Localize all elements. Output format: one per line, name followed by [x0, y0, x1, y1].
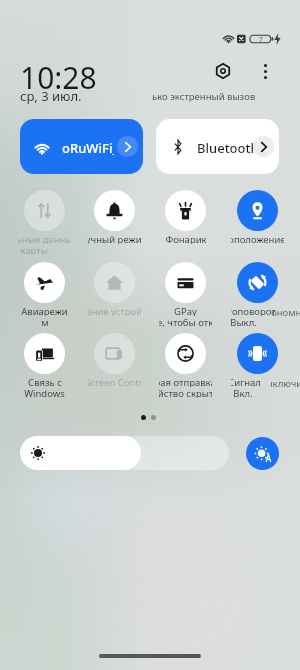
- button[interactable]: Multi-Screen Control: [86, 333, 142, 387]
- button[interactable]: Brightness: [20, 436, 229, 470]
- staticText: Устройство скрыто: [159, 387, 212, 398]
- staticText: Беззвучный режим: [88, 233, 141, 244]
- staticText: ср, 3 июл.: [20, 87, 82, 105]
- staticText: Bluetooth: [197, 139, 253, 155]
- staticText: Связь с: [28, 376, 62, 387]
- button[interactable]: Подключение устройств: [86, 262, 142, 316]
- staticText: и карты: [18, 244, 48, 255]
- staticText: Нажмите, чтобы открыть: [159, 316, 212, 327]
- button[interactable]: Быстрая отправка: [157, 333, 213, 398]
- staticText: ько экстренный вызов: [152, 90, 256, 103]
- staticText: Автономный: [270, 306, 300, 319]
- staticText: Быстрая отправка: [159, 376, 212, 387]
- button[interactable]: More options: [251, 57, 279, 85]
- button[interactable]: Auto brightness: [246, 437, 279, 470]
- button[interactable]: Фонарик: [157, 190, 213, 244]
- staticText: Фонарик: [165, 233, 207, 244]
- button[interactable]: Авиарежи: [16, 262, 72, 327]
- button[interactable]: Сигнал: [229, 333, 285, 398]
- button[interactable]: Expand: [253, 136, 274, 157]
- button[interactable]: Местоположение: [229, 190, 285, 244]
- staticText: Мобильные данные: [18, 233, 71, 244]
- button[interactable]: Беззвучный режим: [86, 190, 142, 244]
- staticText: Выкл.: [231, 316, 257, 327]
- staticText: Windows: [24, 387, 65, 398]
- button[interactable]: Мобильные данные: [16, 190, 72, 255]
- staticText: 10:28: [20, 57, 97, 98]
- button[interactable]: Связь с: [16, 333, 72, 398]
- staticText: Сигнал: [231, 376, 261, 387]
- staticText: oRuWiFi_5G: [62, 139, 114, 155]
- button[interactable]: GPay: [157, 262, 213, 327]
- staticText: Multi-Screen Control: [88, 376, 141, 387]
- staticText: Авиарежи: [21, 305, 68, 316]
- button[interactable]: Bluetooth: [156, 119, 279, 174]
- staticText: Выключить: [270, 377, 300, 390]
- staticText: Автоповорот: [231, 305, 276, 316]
- staticText: Местоположение: [231, 233, 284, 244]
- staticText: Вкл.: [233, 387, 253, 398]
- button[interactable]: oRuWiFi_5G: [20, 119, 143, 174]
- button[interactable]: Settings: [209, 57, 237, 85]
- staticText: Подключение устройств: [88, 305, 141, 316]
- staticText: 7: [259, 35, 263, 44]
- button[interactable]: Автоповорот: [229, 262, 285, 327]
- staticText: GPay: [174, 305, 197, 316]
- button[interactable]: Expand: [117, 136, 138, 157]
- staticText: м: [41, 316, 49, 327]
